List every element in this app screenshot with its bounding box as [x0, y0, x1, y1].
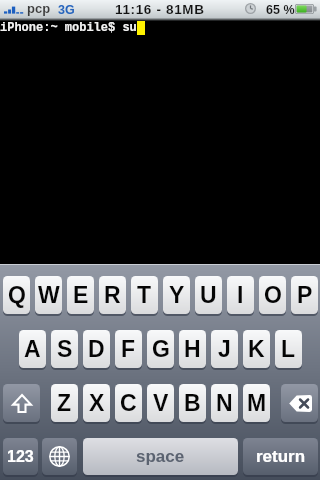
- staticText: 123: [7, 448, 34, 466]
- button[interactable]: G: [147, 330, 174, 368]
- staticText: E: [73, 282, 89, 308]
- button[interactable]: Number and symbol keyboard: [3, 438, 38, 475]
- button[interactable]: T: [131, 276, 158, 314]
- staticText: M: [247, 390, 267, 416]
- button[interactable]: F: [115, 330, 142, 368]
- button[interactable]: K: [243, 330, 270, 368]
- button[interactable]: P: [291, 276, 318, 314]
- button[interactable]: Z: [51, 384, 78, 422]
- button[interactable]: V: [147, 384, 174, 422]
- staticText: H: [184, 336, 201, 362]
- staticText: J: [218, 336, 231, 362]
- button[interactable]: J: [211, 330, 238, 368]
- staticText: G: [152, 336, 170, 362]
- button[interactable]: return: [243, 438, 318, 475]
- staticText: space: [136, 447, 185, 466]
- button[interactable]: O: [259, 276, 286, 314]
- staticText: L: [281, 336, 296, 362]
- button[interactable]: D: [83, 330, 110, 368]
- staticText: K: [248, 336, 265, 362]
- button[interactable]: C: [115, 384, 142, 422]
- staticText: P: [297, 282, 313, 308]
- button[interactable]: M: [243, 384, 270, 422]
- button[interactable]: R: [99, 276, 126, 314]
- staticText: iPhone:~ mobile$ su: [0, 21, 137, 35]
- staticText: R: [104, 282, 121, 308]
- button[interactable]: Q: [3, 276, 30, 314]
- staticText: S: [57, 336, 73, 362]
- staticText: W: [38, 282, 60, 308]
- staticText: return: [256, 447, 306, 466]
- button[interactable]: Shift: [3, 384, 40, 422]
- staticText: Q: [8, 282, 26, 308]
- staticText: U: [200, 282, 217, 308]
- staticText: 65 %: [266, 3, 295, 17]
- staticText: 11:16 - 81MB: [115, 2, 205, 17]
- staticText: C: [120, 390, 137, 416]
- button[interactable]: S: [51, 330, 78, 368]
- button[interactable]: I: [227, 276, 254, 314]
- button[interactable]: A: [19, 330, 46, 368]
- staticText: A: [24, 336, 41, 362]
- staticText: pcp: [27, 1, 51, 16]
- staticText: F: [121, 336, 136, 362]
- staticText: Z: [57, 390, 72, 416]
- button[interactable]: Backspace: [281, 384, 318, 422]
- staticText: Y: [169, 282, 185, 308]
- staticText: I: [237, 282, 244, 308]
- staticText: B: [184, 390, 201, 416]
- button[interactable]: Change keyboard: [42, 438, 77, 475]
- button[interactable]: space: [83, 438, 238, 475]
- button[interactable]: B: [179, 384, 206, 422]
- button[interactable]: H: [179, 330, 206, 368]
- staticText: O: [264, 282, 282, 308]
- button[interactable]: N: [211, 384, 238, 422]
- button[interactable]: W: [35, 276, 62, 314]
- staticText: 3G: [58, 3, 75, 17]
- button[interactable]: L: [275, 330, 302, 368]
- button[interactable]: E: [67, 276, 94, 314]
- staticText: V: [153, 390, 169, 416]
- button[interactable]: Y: [163, 276, 190, 314]
- staticText: T: [137, 282, 152, 308]
- button[interactable]: U: [195, 276, 222, 314]
- staticText: X: [89, 390, 105, 416]
- staticText: N: [216, 390, 233, 416]
- button[interactable]: X: [83, 384, 110, 422]
- staticText: D: [88, 336, 105, 362]
